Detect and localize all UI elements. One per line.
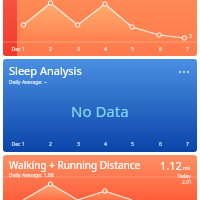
button[interactable]: Sleep Analysis	[3, 59, 197, 152]
staticText: Today	[177, 173, 191, 180]
staticText: 3	[77, 46, 80, 53]
button[interactable]: More options	[177, 67, 191, 77]
staticText: 4	[104, 46, 107, 53]
staticText: Daily Average: 1.68	[9, 172, 54, 179]
staticText: 7	[186, 141, 189, 148]
staticText: 3	[189, 33, 192, 40]
staticText: 5	[131, 141, 134, 148]
staticText: Dec 1	[11, 46, 25, 53]
button[interactable]: 3	[3, 0, 197, 56]
staticText: 3	[77, 141, 80, 148]
staticText: 2	[49, 141, 52, 148]
staticText: Dec 1	[11, 141, 25, 148]
staticText: 2	[49, 46, 52, 53]
staticText: Daily Average: --	[9, 79, 47, 86]
staticText: Walking + Running Distance	[9, 158, 141, 172]
button[interactable]: Walking + Running Distance	[3, 155, 197, 200]
staticText: 7	[186, 46, 189, 53]
staticText: 4	[104, 141, 107, 148]
staticText: 5	[131, 46, 134, 53]
staticText: mi	[183, 164, 191, 172]
staticText: 6	[159, 46, 162, 53]
staticText: 1.12	[160, 158, 182, 173]
staticText: 2.91	[182, 179, 192, 186]
staticText: Sleep Analysis	[9, 63, 82, 78]
staticText: No Data	[71, 101, 129, 121]
staticText: 6	[159, 141, 162, 148]
